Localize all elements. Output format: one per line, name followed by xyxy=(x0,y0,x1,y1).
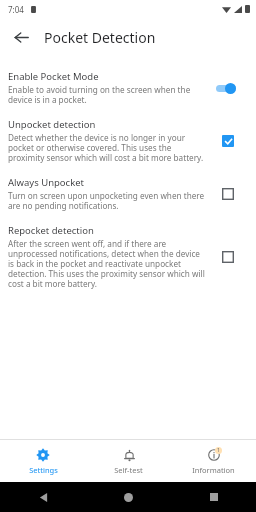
button[interactable]: Back xyxy=(0,482,86,512)
staticText: Unpocket detection xyxy=(8,118,96,131)
button[interactable]: Enable Pocket Mode xyxy=(0,64,256,112)
button[interactable]: Home xyxy=(86,482,171,512)
staticText: Pocket Detection xyxy=(44,28,156,47)
button[interactable]: 1 xyxy=(171,440,256,482)
staticText: 7:04 xyxy=(8,4,24,15)
button[interactable]: Checked xyxy=(217,130,239,152)
button[interactable]: Always Unpocket xyxy=(0,170,256,218)
staticText: Always Unpocket xyxy=(8,176,85,189)
staticText: Settings xyxy=(29,465,58,475)
staticText: Detect whether the device is no longer i… xyxy=(8,132,206,164)
button[interactable]: Self-test xyxy=(86,440,171,482)
button[interactable]: Enable Pocket Mode toggle xyxy=(213,78,243,98)
staticText: 1 xyxy=(217,447,220,454)
staticText: Self-test xyxy=(114,465,143,475)
button[interactable]: Recents xyxy=(171,482,256,512)
staticText: After the screen went off, and if there … xyxy=(8,238,206,290)
button[interactable]: Unchecked xyxy=(217,183,239,205)
button[interactable]: Settings xyxy=(0,440,86,482)
button[interactable]: Unchecked xyxy=(217,246,239,268)
staticText: Information xyxy=(192,465,235,475)
button[interactable]: Repocket detection xyxy=(0,218,256,296)
staticText: Turn on screen upon unpocketing even whe… xyxy=(8,190,206,212)
staticText: Repocket detection xyxy=(8,224,94,237)
button[interactable]: Unpocket detection xyxy=(0,112,256,170)
staticText: Enable to avoid turning on the screen wh… xyxy=(8,84,206,106)
button[interactable]: Back xyxy=(6,22,36,52)
staticText: Enable Pocket Mode xyxy=(8,70,99,83)
